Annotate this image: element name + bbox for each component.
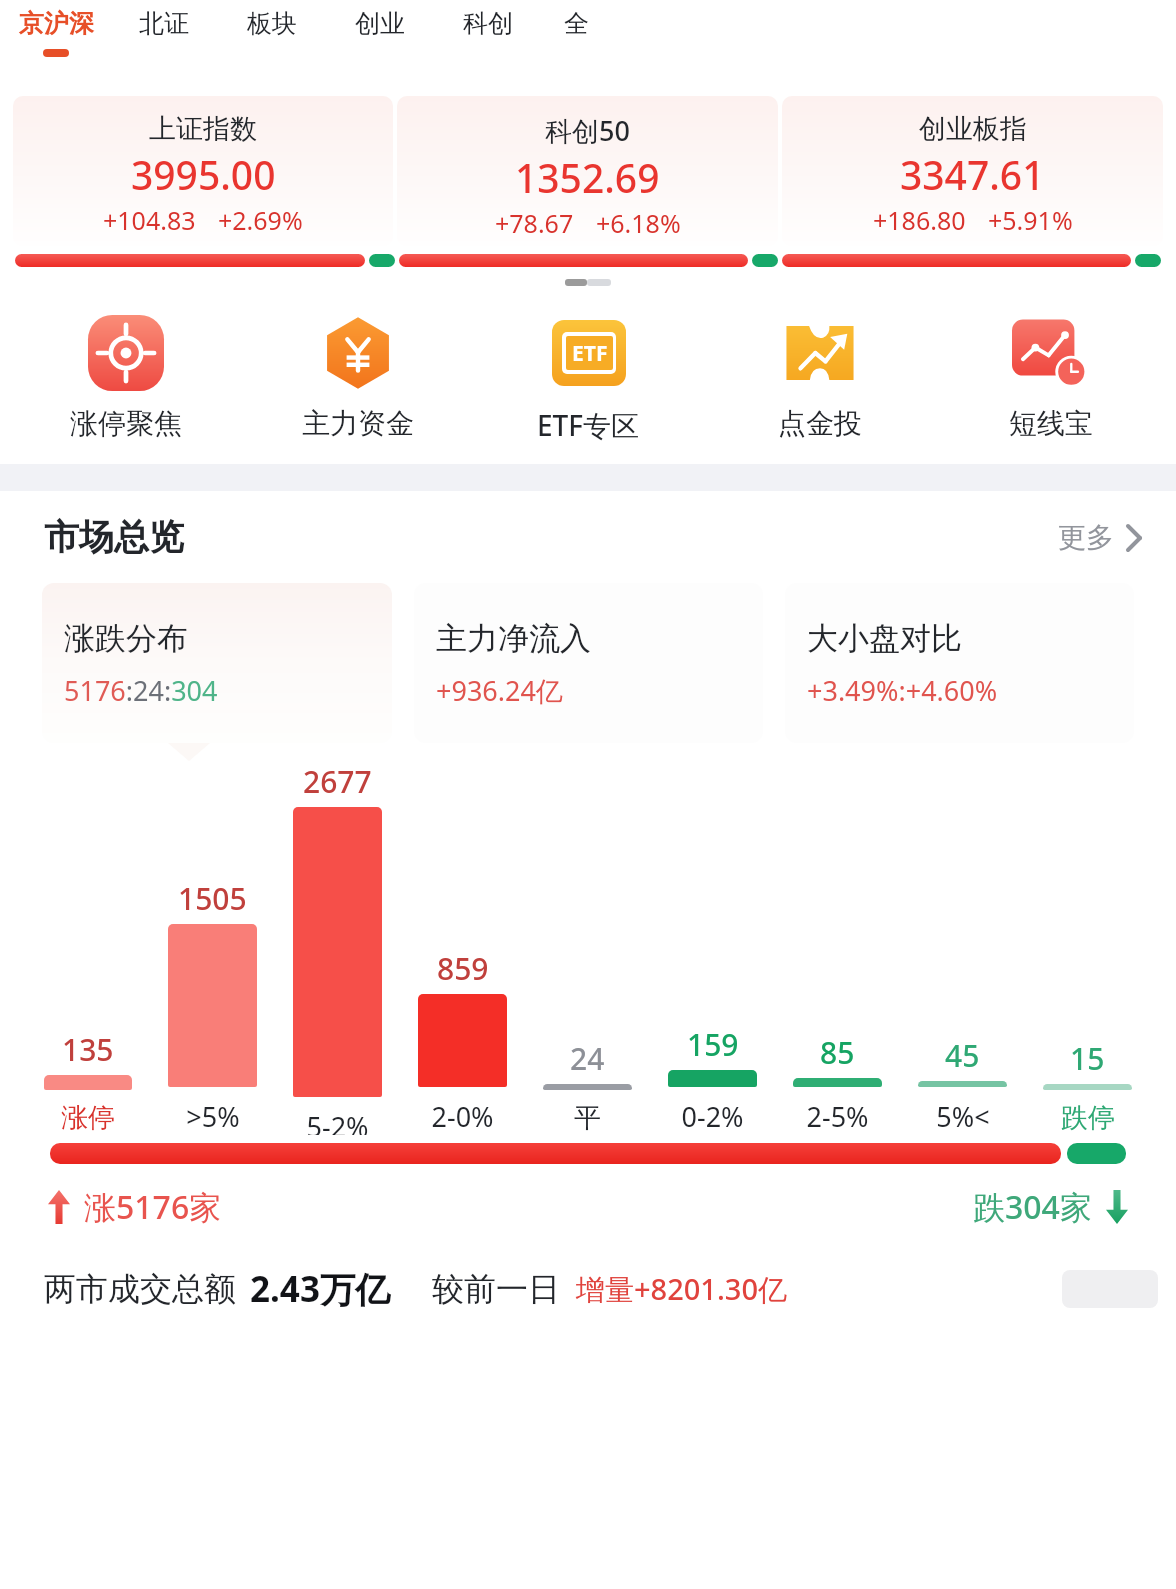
staticText: 0-2% <box>681 1098 744 1135</box>
staticText: ETF专区 <box>537 406 640 444</box>
button[interactable]: 主力资金 <box>242 312 473 441</box>
staticText: 859 <box>437 948 489 989</box>
staticText: 135 <box>62 1029 114 1070</box>
button[interactable]: 859 <box>418 948 507 1135</box>
staticText: 点金投 <box>778 406 862 441</box>
button[interactable]: 京沪深 <box>14 0 98 96</box>
staticText: +5.91% <box>988 203 1073 237</box>
staticText: 159 <box>687 1024 739 1065</box>
staticText: 科创50 <box>545 112 630 149</box>
staticText: 两市成交总额 <box>44 1269 236 1309</box>
staticText: 跌304家 <box>973 1185 1092 1229</box>
button[interactable]: 24 <box>543 1038 632 1135</box>
staticText: 85 <box>820 1032 855 1073</box>
staticText: 增量+8201.30亿 <box>576 1269 788 1309</box>
staticText: 大小盘对比 <box>807 619 962 658</box>
button[interactable]: 点金投 <box>704 312 935 441</box>
button[interactable]: 1505 <box>168 878 257 1135</box>
staticText: 较前一日 <box>432 1269 560 1309</box>
staticText: +3.49%:+4.60% <box>807 672 998 709</box>
button[interactable]: 15 <box>1043 1038 1132 1135</box>
button[interactable]: 上证指数 <box>13 96 393 246</box>
button[interactable]: 短线宝 <box>935 312 1166 441</box>
button[interactable]: 135 <box>44 1029 132 1135</box>
staticText: 2.43万亿 <box>250 1265 390 1313</box>
staticText: ETF <box>572 339 608 368</box>
button[interactable]: 159 <box>668 1024 757 1135</box>
staticText: 1352.69 <box>515 151 660 204</box>
staticText: 2-5% <box>806 1098 869 1135</box>
staticText: 2-0% <box>431 1098 494 1135</box>
button[interactable]: 涨跌分布 <box>42 583 392 743</box>
staticText: 涨停 <box>61 1101 115 1135</box>
staticText: 2677 <box>303 761 372 802</box>
button[interactable]: 创业 <box>338 0 422 96</box>
button[interactable]: ETF专区 <box>473 312 704 444</box>
staticText: 24 <box>570 1038 605 1079</box>
button[interactable]: 大小盘对比 <box>785 583 1134 743</box>
button[interactable]: 板块 <box>230 0 314 96</box>
staticText: +6.18% <box>596 206 681 240</box>
staticText: 市场总览 <box>44 515 184 559</box>
staticText: 创业板指 <box>919 112 1027 146</box>
staticText: 板块 <box>247 8 297 39</box>
staticText: +2.69% <box>218 203 303 237</box>
staticText: 全 <box>564 8 589 39</box>
button[interactable]: 全 <box>554 0 598 96</box>
staticText: 5-2% <box>306 1108 369 1135</box>
staticText: 5%< <box>936 1098 990 1135</box>
staticText: 3995.00 <box>131 148 276 201</box>
button[interactable]: 北证 <box>122 0 206 96</box>
staticText: 主力资金 <box>302 406 414 441</box>
staticText: 3347.61 <box>900 148 1045 201</box>
staticText: 涨5176家 <box>84 1185 222 1229</box>
staticText: 京沪深 <box>19 8 94 39</box>
staticText: +936.24亿 <box>436 672 563 709</box>
staticText: 北证 <box>139 8 189 39</box>
button[interactable]: 主力净流入 <box>414 583 763 743</box>
staticText: +104.83 <box>103 203 196 237</box>
staticText: +186.80 <box>873 203 966 237</box>
staticText: 跌停 <box>1061 1101 1115 1135</box>
staticText: +78.67 <box>495 206 574 240</box>
button[interactable]: 2677 <box>293 761 382 1135</box>
button[interactable]: 科创 <box>446 0 530 96</box>
staticText: 更多 <box>1058 520 1114 555</box>
staticText: 平 <box>574 1101 601 1135</box>
staticText: 15 <box>1070 1038 1105 1079</box>
staticText: 短线宝 <box>1009 406 1093 441</box>
staticText: 涨停聚焦 <box>70 406 182 441</box>
button[interactable]: 创业板指 <box>782 96 1163 246</box>
button[interactable]: 科创50 <box>397 96 778 246</box>
staticText: 涨跌分布 <box>64 619 188 658</box>
staticText: 科创 <box>463 8 513 39</box>
staticText: 1505 <box>178 878 247 919</box>
staticText: 45 <box>945 1035 980 1076</box>
staticText: 上证指数 <box>149 112 257 146</box>
button[interactable]: 85 <box>793 1032 882 1135</box>
staticText: 主力净流入 <box>436 619 591 658</box>
button[interactable]: 更多 <box>1058 520 1142 555</box>
staticText: 创业 <box>355 8 405 39</box>
button[interactable]: 涨停聚焦 <box>10 312 242 441</box>
staticText: >5% <box>186 1098 240 1135</box>
staticText: 5176:24:304 <box>64 672 218 709</box>
button[interactable]: 45 <box>918 1035 1007 1135</box>
